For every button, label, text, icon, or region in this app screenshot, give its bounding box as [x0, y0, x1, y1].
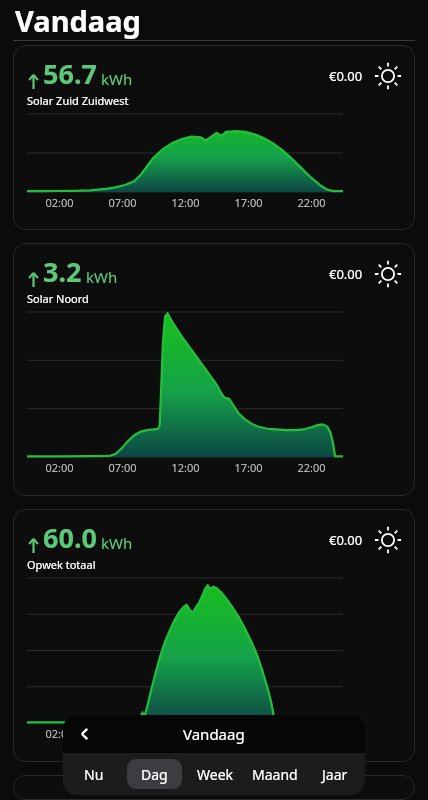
button[interactable]	[13, 775, 415, 800]
button[interactable]: Terug	[63, 715, 107, 753]
staticText: 17:00	[234, 195, 263, 210]
staticText: Opwek totaal	[27, 557, 96, 572]
staticText: Dag	[141, 765, 168, 784]
staticText: Vandaag	[183, 724, 245, 744]
staticText: 07:00	[108, 195, 137, 210]
button[interactable]: Week	[188, 759, 242, 789]
staticText: 02:00	[45, 726, 74, 741]
staticText: €0.00	[329, 531, 363, 549]
staticText: Solar Zuid Zuidwest	[27, 93, 129, 108]
button[interactable]: Nu	[66, 759, 121, 789]
staticText: 17:00	[234, 460, 263, 475]
staticText: Jaar	[322, 765, 348, 784]
staticText: Nu	[84, 765, 104, 784]
button[interactable]: Jaar	[308, 759, 362, 789]
staticText: 12:00	[171, 195, 200, 210]
staticText: 56.7	[43, 55, 97, 92]
staticText: 22:00	[297, 195, 326, 210]
button[interactable]: Zon	[375, 261, 401, 287]
staticText: Vandaag	[15, 1, 141, 40]
staticText: 12:00	[171, 726, 200, 741]
button[interactable]: Zon	[375, 527, 401, 553]
button[interactable]: 60.0	[13, 509, 415, 762]
staticText: kWh	[101, 69, 133, 89]
staticText: 60.0	[43, 519, 97, 556]
staticText: 17:00	[234, 726, 263, 741]
staticText: 02:00	[45, 195, 74, 210]
button[interactable]: 56.7	[13, 45, 415, 230]
staticText: 07:00	[108, 460, 137, 475]
button[interactable]: 3.2	[13, 243, 415, 496]
staticText: 3.2	[43, 253, 82, 290]
staticText: 12:00	[171, 460, 200, 475]
staticText: 22:00	[297, 460, 326, 475]
staticText: €0.00	[329, 265, 363, 283]
staticText: kWh	[101, 533, 133, 553]
staticText: kWh	[86, 267, 118, 287]
staticText: €0.00	[329, 67, 363, 85]
staticText: 02:00	[45, 460, 74, 475]
button[interactable]: Maand	[248, 759, 302, 789]
staticText: Week	[197, 765, 234, 784]
button[interactable]: Dag	[127, 759, 182, 789]
button[interactable]: Zon	[375, 63, 401, 89]
staticText: Solar Noord	[27, 291, 89, 306]
staticText: Maand	[252, 765, 298, 784]
